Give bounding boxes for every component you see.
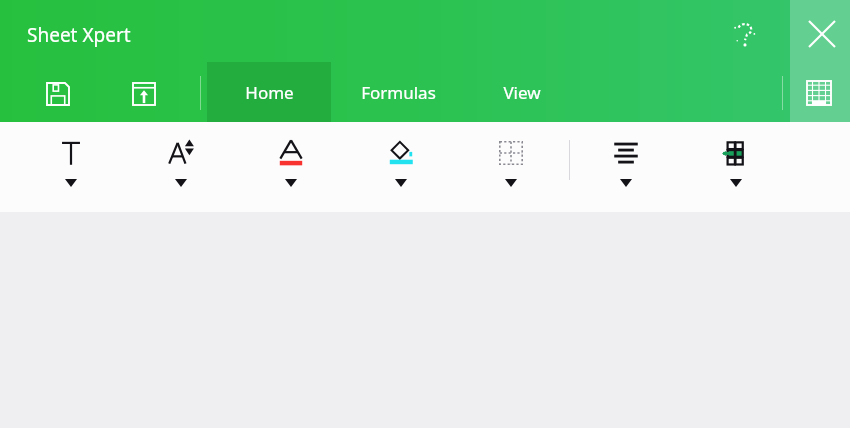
button[interactable]: View (470, 62, 574, 122)
button[interactable]: Formulas (336, 62, 460, 122)
button[interactable]: Borders (479, 127, 543, 199)
button[interactable]: Insert (122, 72, 166, 116)
button[interactable]: Font colour (259, 127, 323, 199)
button[interactable]: Save (36, 72, 80, 116)
button[interactable]: Font size (149, 127, 213, 199)
button[interactable]: Highlight colour (369, 127, 433, 199)
button[interactable]: Home (207, 62, 331, 122)
staticText: Sheet Xpert (27, 22, 131, 48)
button[interactable]: Alignment (594, 127, 658, 199)
staticText: Formulas (361, 81, 436, 104)
button[interactable]: Close (798, 10, 846, 58)
button[interactable]: Sheet (796, 70, 842, 116)
button[interactable]: Font (39, 127, 103, 199)
staticText: View (503, 81, 541, 104)
button[interactable]: Merge cells (704, 127, 768, 199)
staticText: Home (245, 81, 294, 104)
button[interactable]: Help (722, 12, 768, 58)
